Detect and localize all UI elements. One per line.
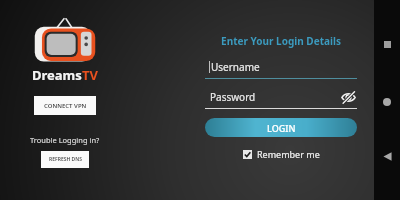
- button[interactable]: REFRESH DNS: [41, 151, 89, 168]
- staticText: Trouble Logging in?: [30, 135, 100, 145]
- button[interactable]: Username: [205, 60, 357, 79]
- button[interactable]: CONNECT VPN: [34, 96, 96, 115]
- staticText: Password: [210, 90, 256, 104]
- staticText: Remember me: [257, 148, 320, 160]
- staticText: Enter Your Login Details: [221, 34, 341, 48]
- button[interactable]: Recent apps: [377, 34, 397, 54]
- staticText: CONNECT VPN: [44, 102, 87, 110]
- staticText: REFRESH DNS: [49, 156, 82, 163]
- staticText: Username: [211, 60, 260, 74]
- staticText: LOGIN: [267, 122, 296, 134]
- button[interactable]: Remember me: [243, 148, 320, 160]
- button[interactable]: Home: [377, 92, 397, 112]
- staticText: Dreams: [32, 66, 82, 84]
- button[interactable]: LOGIN: [205, 118, 357, 137]
- button[interactable]: Password: [205, 90, 357, 104]
- staticText: TV: [82, 66, 98, 84]
- button[interactable]: Show password: [339, 90, 357, 104]
- button[interactable]: Back: [377, 146, 397, 166]
